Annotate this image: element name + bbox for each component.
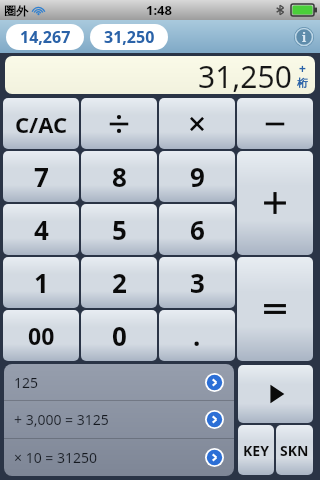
button[interactable]: 6 (159, 204, 235, 255)
button[interactable]: 0 (81, 310, 157, 361)
staticText: C/AC (15, 109, 68, 139)
staticText: 圏外 (4, 3, 28, 18)
button[interactable] (237, 257, 313, 361)
staticText: 2 (112, 265, 127, 300)
staticText: KEY (243, 441, 269, 460)
button[interactable]: 31,250 (90, 24, 168, 50)
staticText: 5 (112, 212, 127, 247)
other: Open entry (205, 448, 224, 467)
button[interactable]: × 10 = 31250 (4, 439, 234, 476)
button[interactable]: + 3,000 = 3125 (4, 401, 234, 438)
other: Play (237, 364, 314, 424)
staticText: 14,267 (20, 26, 71, 48)
button[interactable]: 7 (3, 151, 79, 202)
staticText: 4 (34, 212, 49, 247)
staticText: 桁 (297, 76, 308, 90)
button[interactable]: 00 (3, 310, 79, 361)
staticText: 00 (28, 320, 55, 351)
staticText: 125 (14, 373, 39, 392)
staticText: 7 (34, 159, 49, 194)
button[interactable]: 8 (81, 151, 157, 202)
button[interactable]: 5 (81, 204, 157, 255)
staticText: 1 (34, 265, 49, 300)
other: Open entry (205, 410, 224, 429)
staticText: 8 (112, 159, 127, 194)
button[interactable]: C/AC (3, 98, 79, 149)
button[interactable]: Info (294, 27, 314, 47)
button[interactable] (237, 98, 313, 149)
staticText: 9 (190, 159, 205, 194)
staticText: × 10 = 31250 (14, 448, 97, 467)
staticText: . (193, 318, 201, 353)
button[interactable]: SKN (276, 425, 313, 475)
staticText: 1:48 (146, 1, 172, 19)
staticText: 3 (190, 265, 205, 300)
button[interactable]: 1 (3, 257, 79, 308)
button[interactable]: 4 (3, 204, 79, 255)
staticText: SKN (280, 441, 309, 460)
button[interactable] (237, 151, 313, 255)
button[interactable] (81, 98, 157, 149)
staticText: + 3,000 = 3125 (14, 410, 109, 429)
button[interactable]: KEY (238, 425, 274, 475)
button[interactable]: 9 (159, 151, 235, 202)
button[interactable]: 3 (159, 257, 235, 308)
staticText: 31,250 (198, 56, 292, 94)
button[interactable]: 125 (4, 364, 234, 400)
staticText: + (299, 60, 306, 76)
other: Open entry (205, 373, 224, 392)
staticText: 0 (112, 318, 127, 353)
staticText: i (302, 29, 307, 45)
staticText: 31,250 (104, 26, 155, 48)
button[interactable]: 14,267 (6, 24, 84, 50)
button[interactable]: . (159, 310, 235, 361)
button[interactable] (238, 365, 313, 423)
button[interactable]: 2 (81, 257, 157, 308)
staticText: 6 (190, 212, 205, 247)
button[interactable] (159, 98, 235, 149)
